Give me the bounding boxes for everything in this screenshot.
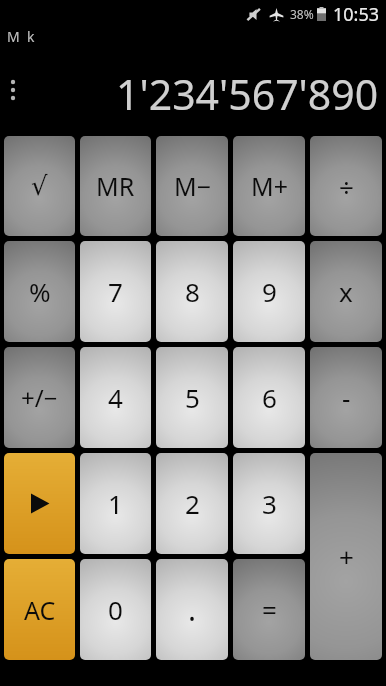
staticText: 4: [108, 380, 123, 415]
button[interactable]: 5: [156, 347, 228, 448]
button[interactable]: 8: [156, 241, 228, 342]
staticText: %: [29, 274, 51, 309]
staticText: 5: [185, 380, 200, 415]
staticText: 2: [185, 486, 200, 521]
staticText: 7: [108, 274, 123, 309]
button[interactable]: 0: [80, 559, 151, 660]
button[interactable]: 7: [80, 241, 151, 342]
staticText: M k: [7, 27, 35, 46]
button[interactable]: AC: [4, 559, 75, 660]
staticText: +: [339, 539, 354, 574]
button[interactable]: 4: [80, 347, 151, 448]
button[interactable]: M+: [233, 136, 305, 236]
staticText: 9: [262, 274, 277, 309]
button[interactable]: 2: [156, 453, 228, 554]
staticText: 38%: [290, 6, 314, 22]
button[interactable]: Square root: [4, 136, 75, 236]
staticText: +/−: [21, 381, 58, 414]
button[interactable]: 3: [233, 453, 305, 554]
staticText: ÷: [339, 169, 354, 204]
staticText: 6: [262, 380, 277, 415]
staticText: 0: [108, 592, 123, 627]
button[interactable]: 6: [233, 347, 305, 448]
button[interactable]: More options: [1, 72, 25, 108]
staticText: 10:53: [333, 2, 380, 27]
staticText: 3: [262, 486, 277, 521]
button[interactable]: =: [233, 559, 305, 660]
staticText: M+: [251, 169, 288, 203]
staticText: 8: [185, 274, 200, 309]
button[interactable]: 1: [80, 453, 151, 554]
staticText: x: [339, 274, 353, 309]
staticText: 1'234'567'890: [116, 66, 379, 122]
staticText: AC: [24, 593, 56, 627]
button[interactable]: 9: [233, 241, 305, 342]
button[interactable]: MR: [80, 136, 151, 236]
staticText: .: [188, 589, 197, 630]
button[interactable]: %: [4, 241, 75, 342]
staticText: =: [262, 592, 277, 627]
button[interactable]: +: [310, 453, 382, 660]
staticText: -: [342, 380, 351, 415]
staticText: M−: [174, 169, 211, 203]
button[interactable]: Backspace: [4, 453, 75, 554]
button[interactable]: M−: [156, 136, 228, 236]
staticText: 1: [108, 486, 123, 521]
staticText: MR: [96, 169, 135, 203]
button[interactable]: -: [310, 347, 382, 448]
button[interactable]: ÷: [310, 136, 382, 236]
staticText: √: [31, 171, 48, 201]
button[interactable]: x: [310, 241, 382, 342]
button[interactable]: .: [156, 559, 228, 660]
button[interactable]: +/−: [4, 347, 75, 448]
